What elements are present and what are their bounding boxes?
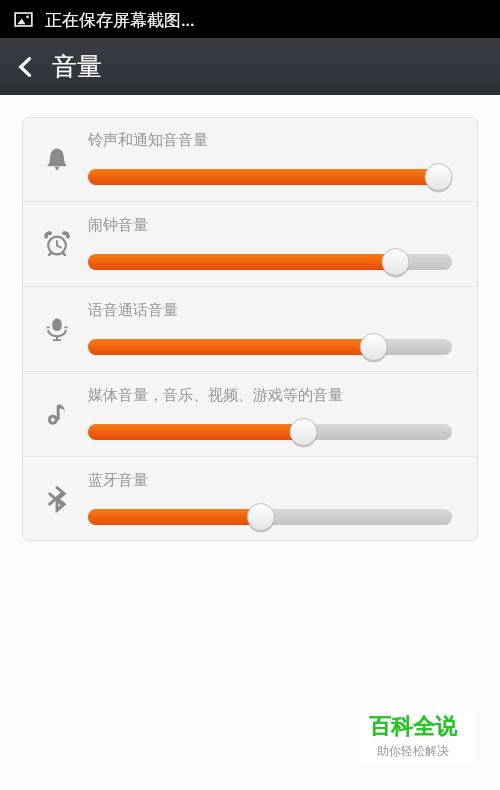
- button[interactable]: 蓝牙音量: [22, 457, 478, 541]
- staticText: 媒体音量，音乐、视频、游戏等的音量: [88, 386, 343, 405]
- button[interactable]: 闹钟音量: [22, 202, 478, 286]
- staticText: 闹钟音量: [88, 216, 148, 235]
- staticText: 助你轻松解决: [377, 743, 449, 758]
- staticText: 铃声和通知音音量: [88, 131, 208, 150]
- staticText: 蓝牙音量: [88, 471, 148, 490]
- staticText: 音量: [52, 51, 102, 82]
- button[interactable]: Back: [0, 38, 52, 95]
- button[interactable]: 媒体音量，音乐、视频、游戏等的音量: [22, 372, 478, 456]
- button[interactable]: 语音通话音量: [22, 287, 478, 371]
- button[interactable]: 铃声和通知音音量: [22, 117, 478, 201]
- staticText: 百科全说: [369, 713, 457, 741]
- staticText: 正在保存屏幕截图...: [45, 8, 195, 31]
- button[interactable]: [88, 503, 452, 531]
- button[interactable]: [88, 163, 452, 191]
- button[interactable]: [88, 418, 452, 446]
- button[interactable]: [88, 248, 452, 276]
- button[interactable]: [88, 333, 452, 361]
- staticText: 语音通话音量: [88, 301, 178, 320]
